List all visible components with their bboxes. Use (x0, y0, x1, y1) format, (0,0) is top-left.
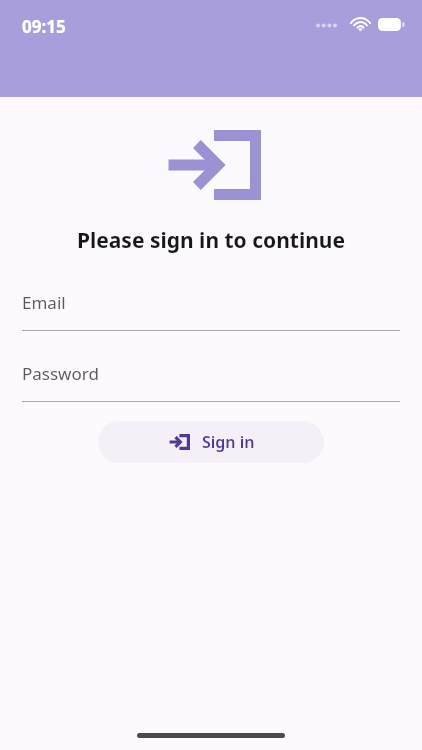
staticText: Password (22, 362, 99, 385)
button[interactable]: Password (22, 348, 400, 402)
other: Sign in (163, 130, 261, 200)
staticText: Please sign in to continue (16, 226, 406, 255)
staticText: Sign in (202, 431, 255, 453)
button[interactable]: Email (22, 277, 400, 331)
button[interactable]: Sign in (98, 421, 324, 463)
staticText: 09:15 (22, 15, 66, 38)
staticText: Email (22, 291, 66, 314)
